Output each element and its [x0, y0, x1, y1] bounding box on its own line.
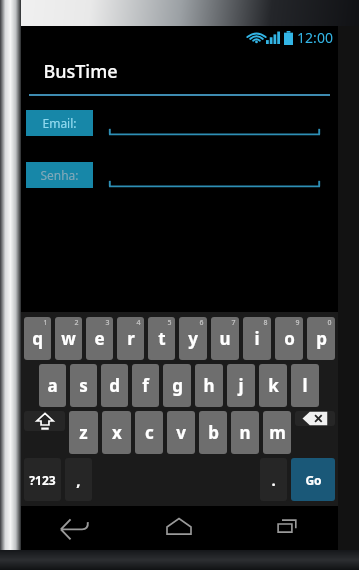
button[interactable] — [109, 110, 320, 136]
staticText: w — [61, 327, 76, 350]
staticText: h — [203, 374, 215, 397]
button[interactable]: s — [70, 364, 97, 407]
button[interactable]: q — [24, 317, 51, 360]
staticText: , — [76, 470, 81, 490]
staticText: 0 — [327, 318, 332, 328]
button[interactable]: n — [231, 411, 259, 454]
button[interactable]: ?123 — [24, 458, 61, 501]
staticText: r — [127, 327, 135, 350]
button[interactable]: o — [275, 317, 303, 360]
staticText: . — [271, 470, 276, 490]
button[interactable]: k — [259, 364, 287, 407]
staticText: a — [47, 374, 58, 397]
staticText: o — [284, 327, 295, 350]
staticText: l — [302, 374, 308, 397]
staticText: s — [79, 374, 88, 397]
button[interactable] — [109, 162, 320, 188]
staticText: k — [268, 374, 279, 397]
button[interactable]: . — [260, 458, 287, 501]
button[interactable]: y — [179, 317, 207, 360]
staticText: y — [188, 327, 198, 350]
staticText: Go — [305, 472, 322, 488]
staticText: 3 — [105, 318, 110, 328]
button[interactable]: Go — [291, 458, 335, 501]
button[interactable]: r — [117, 317, 144, 360]
staticText: t — [158, 327, 166, 350]
staticText: 12:00 — [297, 28, 333, 47]
staticText: g — [172, 374, 183, 397]
button[interactable]: f — [132, 364, 159, 407]
button[interactable]: l — [291, 364, 319, 407]
button[interactable]: g — [163, 364, 191, 407]
staticText: Senha: — [40, 167, 79, 183]
button[interactable]: m — [263, 411, 291, 454]
staticText: z — [79, 421, 88, 444]
staticText: 7 — [231, 318, 236, 328]
staticText: BusTime — [43, 59, 118, 84]
button[interactable]: w — [55, 317, 82, 360]
staticText: ?123 — [29, 472, 56, 488]
staticText: b — [208, 421, 219, 444]
button[interactable]: c — [135, 411, 163, 454]
button[interactable]: x — [102, 411, 131, 454]
button[interactable]: i — [243, 317, 271, 360]
staticText: i — [254, 327, 260, 350]
staticText: f — [142, 374, 149, 397]
staticText: m — [269, 421, 286, 444]
staticText: 1 — [43, 318, 48, 328]
staticText: q — [32, 327, 43, 350]
button[interactable]: p — [307, 317, 335, 360]
staticText: j — [238, 374, 244, 397]
button[interactable]: e — [86, 317, 113, 360]
button[interactable]: v — [167, 411, 195, 454]
button[interactable]: Senha: — [26, 162, 93, 188]
button[interactable]: Email: — [26, 110, 93, 136]
button[interactable]: Backspace — [295, 411, 335, 426]
button[interactable]: d — [101, 364, 128, 407]
staticText: 5 — [167, 318, 172, 328]
staticText: n — [239, 421, 251, 444]
staticText: Email: — [42, 115, 77, 131]
button[interactable]: j — [227, 364, 255, 407]
button[interactable]: u — [211, 317, 239, 360]
button[interactable]: b — [199, 411, 227, 454]
staticText: d — [109, 374, 120, 397]
staticText: v — [176, 421, 186, 444]
button[interactable]: h — [195, 364, 223, 407]
button[interactable]: t — [148, 317, 175, 360]
staticText: e — [94, 327, 105, 350]
staticText: c — [145, 421, 154, 444]
button[interactable]: Shift — [24, 411, 65, 431]
button[interactable]: a — [39, 364, 66, 407]
staticText: u — [219, 327, 231, 350]
button[interactable]: Recent apps — [232, 506, 338, 550]
button[interactable]: , — [65, 458, 92, 501]
staticText: 2 — [74, 318, 79, 328]
button[interactable]: z — [69, 411, 98, 454]
staticText: x — [112, 421, 122, 444]
staticText: 8 — [263, 318, 268, 328]
staticText: 9 — [295, 318, 300, 328]
button[interactable]: Home — [126, 506, 232, 550]
staticText: 6 — [199, 318, 204, 328]
button[interactable]: Back — [21, 506, 126, 550]
staticText: p — [316, 327, 327, 350]
staticText: 4 — [136, 318, 141, 328]
